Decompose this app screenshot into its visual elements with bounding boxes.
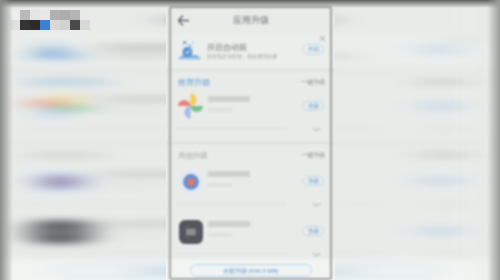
button[interactable]: 升级 xyxy=(10,165,171,212)
button[interactable]: Expand xyxy=(311,249,321,259)
staticText: 一键升级 xyxy=(301,78,325,86)
staticText: 安装包自动安装，省去繁琐步骤 xyxy=(99,53,171,59)
button[interactable]: 升级 xyxy=(331,215,482,262)
button[interactable]: 升级 xyxy=(302,226,324,236)
button[interactable]: 全部升级 (436.5 MB) xyxy=(331,264,437,277)
button[interactable]: 一键升级 xyxy=(301,78,325,86)
button[interactable]: 升级 xyxy=(170,90,331,137)
button[interactable]: 升级 xyxy=(413,101,466,111)
staticText: 应用升级 xyxy=(233,14,269,25)
button[interactable]: 全部升级 (436.5 MB) xyxy=(58,264,171,277)
staticText: 安装包自动安装，省去繁琐步骤 xyxy=(207,53,277,59)
staticText: 应用升级 xyxy=(331,14,334,25)
button[interactable]: Back xyxy=(174,11,192,29)
staticText: 全部升级 (436.5 MB) xyxy=(331,267,358,275)
button[interactable]: 升级 xyxy=(10,90,171,137)
button[interactable]: 升级 xyxy=(10,215,171,262)
staticText: 升级 xyxy=(308,178,319,185)
button[interactable]: 升级 xyxy=(170,165,331,212)
staticText: 推荐升级 xyxy=(29,77,106,87)
staticText: 应用升级 xyxy=(161,14,171,25)
staticText: 升级 xyxy=(308,103,319,110)
button[interactable]: 升级 xyxy=(331,90,482,137)
staticText: 全部升级 (436.5 MB) xyxy=(223,267,279,275)
button[interactable]: 开启 xyxy=(302,44,324,55)
staticText: 推荐升级 xyxy=(178,77,210,87)
staticText: 开启自动装 xyxy=(207,42,247,52)
button[interactable]: Back xyxy=(20,11,63,29)
button[interactable]: 开启 xyxy=(413,44,466,55)
staticText: 一键升级 xyxy=(301,151,325,159)
staticText: 其他升级 xyxy=(178,151,208,160)
staticText: 开启 xyxy=(308,46,319,53)
button[interactable]: 升级 xyxy=(413,226,466,236)
button[interactable]: 升级 xyxy=(302,101,324,111)
button[interactable]: 一键升级 xyxy=(301,151,325,159)
staticText: 全部升级 (436.5 MB) xyxy=(137,267,171,275)
button[interactable]: 全部升级 (436.5 MB) xyxy=(190,264,312,277)
staticText: 升级 xyxy=(308,228,319,235)
staticText: 开启自动装 xyxy=(99,42,171,52)
button[interactable]: Expand xyxy=(311,199,321,209)
staticText: 安装包自动安装，省去繁琐步骤 xyxy=(331,53,353,59)
button[interactable]: 升级 xyxy=(331,165,482,212)
button[interactable]: 升级 xyxy=(302,176,324,186)
button[interactable]: Expand xyxy=(311,124,321,134)
button[interactable]: Close xyxy=(317,33,327,43)
button[interactable]: 升级 xyxy=(413,176,466,186)
button[interactable]: 升级 xyxy=(170,215,331,262)
